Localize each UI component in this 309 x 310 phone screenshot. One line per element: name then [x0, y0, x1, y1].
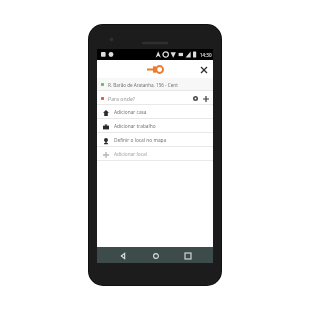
button[interactable]: R. Barão de Aratanha, 156 - Cent	[97, 78, 213, 91]
button[interactable]: Adicionar casa	[97, 105, 213, 119]
button[interactable]: Início	[148, 248, 163, 263]
button[interactable]: Adicionar parada	[200, 93, 211, 104]
button[interactable]: Recentes	[180, 248, 195, 263]
staticText: Definir o local no mapa	[114, 137, 167, 144]
button[interactable]: Voltar	[115, 248, 130, 263]
staticText: Adicionar casa	[114, 109, 147, 116]
button[interactable]: Fechar	[197, 63, 210, 76]
staticText: Adicionar local	[114, 151, 147, 158]
staticText: Para onde?	[108, 95, 190, 102]
staticText: 14:30	[200, 52, 212, 58]
button[interactable]: Adicionar trabalho	[97, 119, 213, 133]
button[interactable]: Opções	[190, 93, 200, 103]
button[interactable]: Para onde?	[97, 91, 213, 105]
staticText: Adicionar trabalho	[114, 123, 156, 130]
button[interactable]: Adicionar local	[97, 147, 213, 161]
button[interactable]: Definir o local no mapa	[97, 133, 213, 147]
staticText: R. Barão de Aratanha, 156 - Cent	[108, 82, 178, 88]
